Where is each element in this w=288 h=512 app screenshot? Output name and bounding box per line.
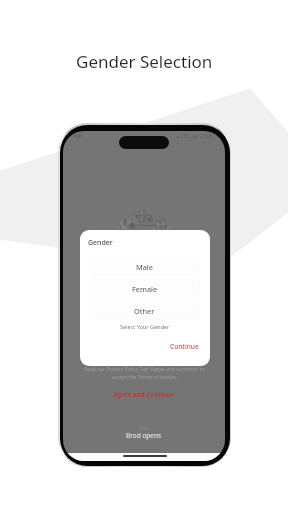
staticText: from [139, 425, 150, 431]
staticText: Gender Selection [76, 50, 213, 73]
button[interactable]: Agree and Continue [107, 387, 181, 401]
staticText: LTE [181, 133, 190, 140]
staticText: Male [136, 262, 153, 272]
staticText: Female [132, 284, 158, 294]
staticText: Brod opens [126, 431, 162, 440]
button[interactable]: Other [89, 301, 200, 320]
staticText: Gender [88, 238, 113, 248]
staticText: Agree and Continue [113, 390, 175, 398]
button[interactable]: Male [89, 257, 200, 276]
staticText: Read our Privacy Policy Tap "Agree and c… [84, 366, 205, 380]
staticText: Other [134, 306, 155, 316]
staticText: 52% [203, 133, 213, 140]
staticText: Select Your Gender [120, 323, 170, 330]
button[interactable]: Female [89, 279, 200, 298]
staticText: 9:41 [74, 133, 83, 139]
staticText: Continue [170, 342, 199, 351]
button[interactable]: Continue [167, 340, 202, 353]
